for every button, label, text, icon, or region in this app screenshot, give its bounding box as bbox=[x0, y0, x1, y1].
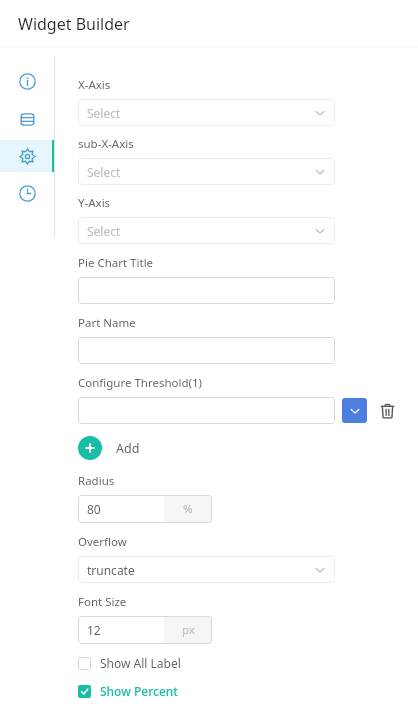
button[interactable]: 80 bbox=[78, 495, 212, 523]
button[interactable] bbox=[78, 397, 335, 424]
button[interactable]: truncate bbox=[78, 556, 335, 583]
staticText: sub-X-Axis bbox=[78, 136, 134, 152]
button[interactable]: Select bbox=[78, 217, 335, 244]
staticText: Y-Axis bbox=[78, 195, 111, 211]
button[interactable]: 12 bbox=[78, 616, 212, 644]
staticText: px bbox=[182, 622, 195, 638]
staticText: X-Axis bbox=[78, 77, 111, 93]
button[interactable]: Show Percent bbox=[78, 680, 396, 702]
button[interactable] bbox=[78, 277, 335, 304]
button[interactable]: History bbox=[0, 177, 55, 209]
button[interactable]: Select bbox=[78, 99, 335, 126]
button[interactable]: Data source bbox=[0, 103, 55, 135]
staticText: Radius bbox=[78, 473, 115, 489]
staticText: Select bbox=[87, 164, 314, 180]
staticText: Add bbox=[116, 440, 140, 457]
staticText: Show Percent bbox=[100, 683, 178, 699]
staticText: Font Size bbox=[78, 594, 127, 610]
staticText: Part Name bbox=[78, 315, 136, 331]
button[interactable]: Select bbox=[78, 158, 335, 185]
staticText: Pie Chart Title bbox=[78, 255, 154, 271]
staticText: truncate bbox=[87, 562, 314, 578]
button[interactable]: Info bbox=[0, 65, 55, 97]
staticText: 80 bbox=[87, 501, 101, 517]
button[interactable]: Delete threshold bbox=[379, 401, 396, 421]
button[interactable]: Add bbox=[78, 434, 140, 462]
button[interactable] bbox=[78, 337, 335, 364]
staticText: Widget Builder bbox=[18, 13, 130, 35]
staticText: Show All Label bbox=[100, 655, 181, 671]
button[interactable]: Settings bbox=[0, 140, 55, 172]
staticText: Select bbox=[87, 105, 314, 121]
staticText: Overflow bbox=[78, 534, 127, 550]
staticText: Configure Threshold(1) bbox=[78, 375, 203, 391]
staticText: Select bbox=[87, 223, 314, 239]
staticText: % bbox=[183, 501, 193, 517]
staticText: 12 bbox=[87, 622, 101, 638]
button[interactable]: Expand threshold bbox=[342, 398, 367, 423]
button[interactable]: Show All Label bbox=[78, 652, 396, 674]
